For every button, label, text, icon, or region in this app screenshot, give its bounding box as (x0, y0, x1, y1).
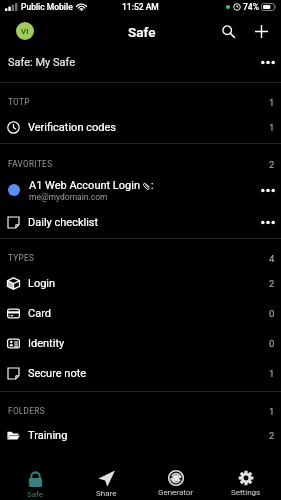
other: More options (251, 47, 281, 77)
staticText: Settings (231, 488, 261, 497)
staticText: me@mydomain.com (29, 192, 108, 202)
staticText: 1 (269, 122, 275, 133)
staticText: Login (28, 277, 56, 290)
staticText: 0 (269, 308, 275, 319)
staticText: Secure note (28, 367, 87, 380)
staticText: 1 (269, 368, 275, 379)
staticText: 4 (269, 253, 275, 264)
staticText: A1 Web Account Login (29, 179, 140, 192)
staticText: Safe: My Safe (8, 56, 251, 69)
staticText: FAVORITES (8, 159, 53, 169)
staticText: 0 (269, 338, 275, 349)
button[interactable]: Card (0, 298, 281, 328)
staticText: 11:52 AM (122, 2, 159, 12)
staticText: Training (28, 429, 68, 442)
staticText: Daily checklist (28, 216, 251, 229)
staticText: Identity (28, 337, 65, 350)
button[interactable]: Login (0, 268, 281, 298)
button[interactable]: Share (71, 453, 141, 500)
button[interactable]: Secure note (0, 358, 281, 388)
staticText: Card (28, 307, 51, 320)
button[interactable]: Search (212, 15, 245, 48)
staticText: Verification codes (28, 121, 116, 134)
staticText: Safe (128, 24, 156, 40)
button[interactable]: Safe: My Safe (0, 45, 281, 79)
staticText: 1 (269, 97, 275, 108)
button[interactable]: Generator (141, 453, 211, 500)
staticText: TYPES (8, 253, 35, 263)
staticText: : (151, 180, 154, 192)
button[interactable]: Daily checklist (0, 207, 281, 237)
staticText: Public Mobile (21, 2, 73, 12)
button[interactable]: Safe (0, 453, 71, 500)
staticText: 2 (269, 278, 275, 289)
button[interactable]: Account (16, 22, 34, 40)
staticText: TOTP (8, 97, 30, 107)
staticText: Generator (158, 488, 194, 497)
button[interactable]: Add item (245, 15, 278, 48)
button[interactable]: Verification codes (0, 112, 281, 142)
staticText: VI (21, 27, 29, 36)
staticText: 2 (269, 159, 275, 170)
staticText: 2 (269, 430, 275, 441)
button[interactable]: Settings (211, 453, 281, 500)
other: More options (251, 175, 281, 205)
other: More options (251, 207, 281, 237)
button[interactable]: Training (0, 420, 281, 450)
staticText: Share (96, 489, 117, 498)
staticText: FOLDERS (8, 406, 45, 416)
button[interactable]: Identity (0, 328, 281, 358)
staticText: Safe (27, 490, 44, 499)
button[interactable]: A1 Web Account Login (0, 174, 281, 206)
staticText: 1 (269, 406, 275, 417)
staticText: 74% (243, 2, 259, 12)
